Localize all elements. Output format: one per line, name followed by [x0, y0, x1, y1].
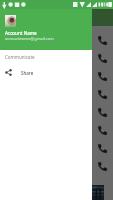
button[interactable]: Call	[92, 103, 113, 121]
staticText: Communicate	[5, 54, 35, 60]
button[interactable]: Call	[92, 85, 113, 103]
button[interactable]: Call	[92, 49, 113, 67]
button[interactable]: Share	[0, 66, 113, 79]
staticText: Share	[21, 70, 34, 76]
button[interactable]: Call	[92, 31, 113, 49]
button[interactable]: Call	[92, 67, 113, 85]
button[interactable]: Call	[92, 121, 113, 139]
staticText: Account Name	[5, 30, 37, 36]
staticText: accountname@gmail.com	[5, 36, 54, 41]
button[interactable]: Call	[92, 139, 113, 157]
button[interactable]: Call	[92, 157, 113, 175]
